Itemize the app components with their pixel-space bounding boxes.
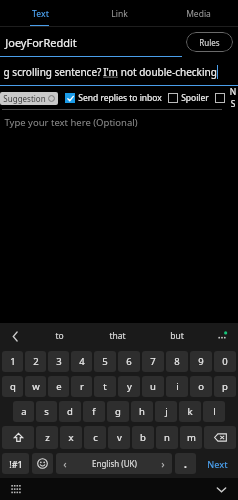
button[interactable]: Keyboard layout: [8, 481, 24, 497]
staticText: a: [21, 405, 27, 418]
button[interactable]: v: [108, 426, 130, 449]
staticText: 9: [198, 355, 204, 368]
staticText: k: [187, 405, 193, 418]
button[interactable]: s: [36, 401, 57, 422]
button[interactable]: t: [94, 376, 116, 397]
staticText: b: [140, 431, 146, 444]
staticText: g: [115, 405, 121, 418]
button[interactable]: z: [36, 426, 58, 449]
button[interactable]: o: [190, 376, 212, 397]
button[interactable]: k: [179, 401, 201, 422]
staticText: p: [222, 380, 228, 393]
staticText: y: [127, 380, 132, 393]
button[interactable]: u: [142, 376, 164, 397]
staticText: !#1: [9, 458, 23, 470]
staticText: g scrolling sentence?: [2, 65, 103, 79]
button[interactable]: NS: [215, 86, 238, 110]
button[interactable]: y: [118, 376, 140, 397]
staticText: 0: [222, 355, 228, 368]
button[interactable]: c: [84, 426, 106, 449]
button[interactable]: 8: [166, 351, 188, 372]
button[interactable]: 4: [71, 351, 92, 372]
button[interactable]: Suggestion: [3, 92, 55, 105]
button[interactable]: Send replies to inbox: [65, 92, 162, 104]
staticText: 5: [102, 355, 108, 368]
button[interactable]: l: [203, 401, 225, 422]
button[interactable]: More options: [206, 323, 238, 349]
staticText: 3: [56, 355, 62, 368]
staticText: NS: [228, 86, 238, 110]
staticText: x: [68, 431, 74, 444]
staticText: t: [103, 380, 107, 393]
button[interactable]: 2: [25, 351, 46, 372]
button[interactable]: 7: [142, 351, 164, 372]
button[interactable]: x: [60, 426, 82, 449]
button[interactable]: .: [175, 453, 196, 474]
button[interactable]: n: [156, 426, 178, 449]
button[interactable]: but: [147, 323, 206, 349]
button[interactable]: j: [155, 401, 177, 422]
button[interactable]: 6: [118, 351, 140, 372]
staticText: w: [32, 380, 40, 393]
button[interactable]: Back: [0, 323, 30, 349]
button[interactable]: Text: [0, 0, 80, 27]
button[interactable]: !#1: [2, 453, 29, 474]
staticText: not double-checking: [118, 65, 217, 79]
staticText: Suggestion: [3, 93, 46, 104]
staticText: e: [56, 380, 62, 393]
staticText: that: [109, 330, 126, 342]
staticText: l: [213, 405, 216, 418]
staticText: to: [55, 330, 64, 342]
staticText: 6: [126, 355, 132, 368]
staticText: English (UK): [92, 458, 137, 469]
button[interactable]: b: [132, 426, 154, 449]
button[interactable]: g: [107, 401, 129, 422]
button[interactable]: ‹: [56, 453, 172, 474]
button[interactable]: Backspace: [204, 426, 236, 449]
button[interactable]: Shift: [2, 426, 34, 449]
button[interactable]: Rules: [186, 32, 233, 52]
button[interactable]: Media: [159, 0, 238, 27]
button[interactable]: i: [166, 376, 188, 397]
button[interactable]: Spoiler: [168, 92, 209, 104]
staticText: v: [117, 431, 122, 444]
button[interactable]: a: [13, 401, 34, 422]
staticText: ‹: [63, 456, 67, 471]
button[interactable]: w: [25, 376, 46, 397]
staticText: m: [187, 431, 196, 444]
staticText: but: [170, 330, 184, 342]
button[interactable]: 9: [190, 351, 212, 372]
staticText: f: [92, 405, 96, 418]
staticText: 7: [150, 355, 156, 368]
button[interactable]: e: [48, 376, 69, 397]
button[interactable]: Type your text here (Optional): [4, 116, 238, 323]
button[interactable]: Hide keyboard: [212, 480, 230, 498]
staticText: I'm: [103, 65, 118, 79]
button[interactable]: Emoji: [32, 453, 53, 474]
button[interactable]: d: [59, 401, 81, 422]
staticText: Next: [207, 458, 228, 470]
staticText: Spoiler: [181, 92, 209, 104]
button[interactable]: r: [71, 376, 92, 397]
staticText: z: [45, 431, 50, 444]
button[interactable]: 3: [48, 351, 69, 372]
staticText: 2: [33, 355, 39, 368]
button[interactable]: p: [214, 376, 236, 397]
staticText: 1: [10, 355, 16, 368]
button[interactable]: f: [83, 401, 105, 422]
button[interactable]: 1: [2, 351, 23, 372]
staticText: h: [139, 405, 145, 418]
staticText: s: [44, 405, 49, 418]
button[interactable]: m: [180, 426, 202, 449]
staticText: Text: [32, 8, 49, 20]
button[interactable]: that: [88, 323, 147, 349]
button[interactable]: Next: [199, 453, 236, 474]
button[interactable]: 0: [214, 351, 236, 372]
button[interactable]: q: [2, 376, 23, 397]
button[interactable]: Link: [80, 0, 159, 27]
staticText: r: [80, 380, 84, 393]
button[interactable]: 5: [94, 351, 116, 372]
button[interactable]: h: [131, 401, 153, 422]
button[interactable]: to: [30, 323, 88, 349]
staticText: JoeyForReddit: [5, 35, 77, 50]
